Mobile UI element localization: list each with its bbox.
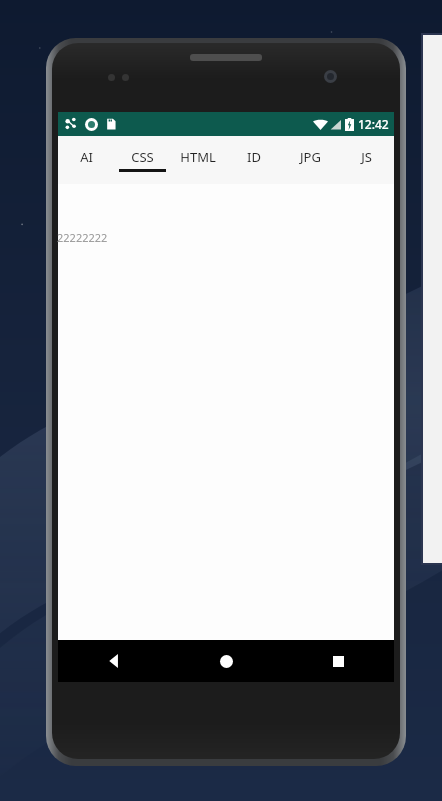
button[interactable]: HTML — [170, 136, 226, 184]
staticText: HTML — [180, 148, 216, 166]
staticText: CSS — [131, 148, 154, 166]
button[interactable]: AI — [58, 136, 114, 184]
staticText: 22222222 — [57, 230, 108, 245]
button[interactable]: JS — [338, 136, 394, 184]
staticText: JS — [361, 148, 372, 166]
staticText: 12:42 — [358, 116, 389, 132]
button[interactable]: Home — [170, 640, 282, 682]
staticText: ID — [247, 148, 261, 166]
button[interactable]: Recent apps — [282, 640, 394, 682]
button[interactable]: CSS — [114, 136, 170, 184]
staticText: JPG — [300, 148, 321, 166]
button[interactable]: JPG — [282, 136, 338, 184]
staticText: AI — [80, 148, 93, 166]
button[interactable]: Back — [58, 640, 170, 682]
button[interactable]: ID — [226, 136, 282, 184]
